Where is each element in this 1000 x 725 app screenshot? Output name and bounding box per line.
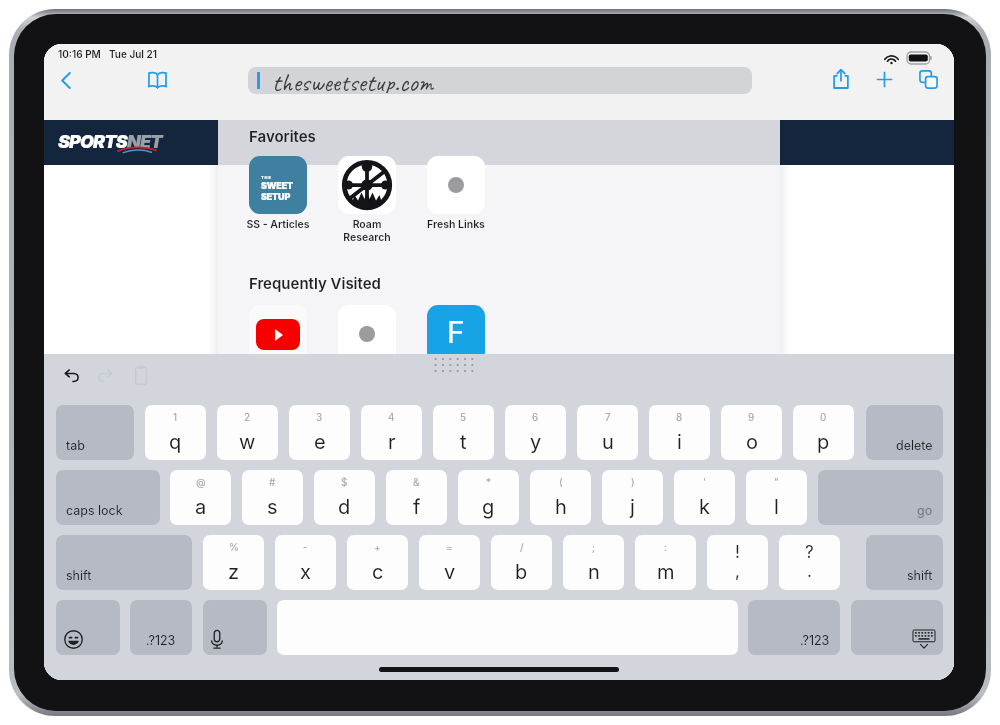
button[interactable]: -: [275, 535, 336, 590]
staticText: T H E: [261, 175, 271, 180]
staticText: 2: [244, 411, 251, 423]
button[interactable]: @: [170, 470, 231, 525]
button[interactable]: .?123: [748, 600, 840, 655]
button[interactable]: Hide keyboard: [851, 600, 943, 655]
button[interactable]: #: [242, 470, 303, 525]
button[interactable]: Undo: [56, 359, 88, 391]
staticText: j: [630, 495, 635, 519]
staticText: *: [486, 476, 492, 488]
button[interactable]: ': [674, 470, 735, 525]
button[interactable]: Fresh Links: [414, 156, 498, 231]
button[interactable]: :: [635, 535, 696, 590]
staticText: 0: [820, 411, 827, 423]
staticText: g: [482, 495, 495, 519]
staticText: x: [300, 560, 311, 584]
button[interactable]: ;: [563, 535, 624, 590]
button[interactable]: [325, 305, 409, 363]
button[interactable]: shift: [56, 535, 192, 590]
staticText: q: [169, 430, 182, 454]
button[interactable]: +: [347, 535, 408, 590]
staticText: u: [602, 430, 614, 454]
staticText: 9: [748, 411, 755, 423]
button[interactable]: *: [458, 470, 519, 525]
staticText: Frequently Visited: [249, 274, 381, 292]
button[interactable]: F: [414, 305, 498, 363]
button[interactable]: tab: [56, 405, 134, 460]
button[interactable]: Back: [46, 60, 86, 100]
button[interactable]: Bookmarks: [137, 60, 177, 100]
staticText: SWEET: [261, 180, 293, 191]
staticText: c: [372, 560, 384, 584]
staticText: shift: [66, 568, 92, 583]
button[interactable]: 9: [721, 405, 782, 460]
staticText: caps lock: [66, 503, 123, 518]
button[interactable]: 7: [577, 405, 638, 460]
staticText: 8: [676, 411, 683, 423]
staticText: .: [807, 561, 812, 582]
button[interactable]: Roam Research: [325, 156, 409, 244]
button[interactable]: 6: [505, 405, 566, 460]
button[interactable]: =: [419, 535, 480, 590]
staticText: #: [269, 476, 276, 488]
button[interactable]: thesweetsetup.com: [248, 67, 752, 94]
staticText: NET: [127, 131, 162, 153]
button[interactable]: ?: [779, 535, 840, 590]
staticText: d: [338, 495, 351, 519]
button[interactable]: %: [203, 535, 264, 590]
staticText: +: [374, 541, 381, 553]
button[interactable]: Dictate: [203, 600, 267, 655]
button[interactable]: &: [386, 470, 447, 525]
button[interactable]: 4: [361, 405, 422, 460]
staticText: thesweetsetup.com: [272, 67, 434, 93]
button[interactable]: T H E: [236, 156, 320, 231]
staticText: SETUP: [261, 191, 291, 202]
button[interactable]: delete: [866, 405, 943, 460]
staticText: m: [657, 560, 675, 584]
button[interactable]: caps lock: [56, 470, 160, 525]
staticText: r: [388, 430, 396, 454]
button[interactable]: 5: [433, 405, 494, 460]
button[interactable]: New Tab: [864, 59, 904, 99]
staticText: t: [460, 430, 467, 454]
staticText: ?: [805, 542, 814, 563]
staticText: b: [515, 560, 528, 584]
button[interactable]: 1: [145, 405, 206, 460]
button[interactable]: .?123: [130, 600, 192, 655]
button[interactable]: ": [746, 470, 807, 525]
button[interactable]: $: [314, 470, 375, 525]
button[interactable]: 2: [217, 405, 278, 460]
staticText: n: [588, 560, 600, 584]
button[interactable]: (: [530, 470, 591, 525]
button[interactable]: Tabs: [908, 59, 948, 99]
button[interactable]: 8: [649, 405, 710, 460]
staticText: /: [520, 541, 524, 553]
staticText: $: [341, 476, 348, 488]
staticText: tab: [66, 438, 85, 453]
staticText: e: [314, 430, 326, 454]
button[interactable]: /: [491, 535, 552, 590]
button[interactable]: Paste: [125, 359, 157, 391]
button[interactable]: !: [707, 535, 768, 590]
staticText: (: [559, 476, 563, 488]
staticText: p: [817, 430, 830, 454]
staticText: z: [228, 560, 240, 584]
staticText: .?123: [146, 633, 176, 648]
button[interactable]: ): [602, 470, 663, 525]
button[interactable]: [236, 305, 320, 363]
staticText: ": [774, 476, 779, 488]
button[interactable]: Share: [821, 59, 861, 99]
button[interactable]: 0: [793, 405, 854, 460]
button[interactable]: 3: [289, 405, 350, 460]
staticText: 7: [605, 411, 611, 423]
staticText: l: [774, 495, 779, 519]
staticText: y: [530, 430, 542, 454]
staticText: ,: [735, 561, 740, 582]
staticText: Favorites: [249, 127, 316, 145]
button[interactable]: Emoji: [56, 600, 120, 655]
button[interactable]: shift: [866, 535, 943, 590]
staticText: @: [196, 476, 206, 488]
button[interactable]: go: [818, 470, 943, 525]
staticText: !: [735, 542, 740, 563]
